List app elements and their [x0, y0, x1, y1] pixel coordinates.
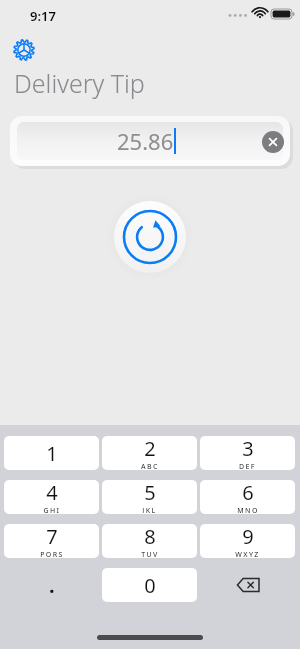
button[interactable]: 4 — [4, 480, 99, 514]
button[interactable]: Settings — [10, 36, 38, 64]
button[interactable]: 3 — [200, 436, 295, 470]
button[interactable]: 25.86 — [17, 122, 283, 160]
staticText: 7 — [46, 524, 58, 550]
button[interactable]: 1 — [4, 436, 99, 470]
staticText: WXYZ — [235, 550, 260, 557]
button[interactable]: 5 — [102, 480, 197, 514]
staticText: ABC — [141, 462, 159, 469]
staticText: . — [49, 572, 55, 599]
staticText: 9 — [242, 524, 254, 550]
staticText: 2 — [144, 436, 156, 462]
staticText: 6 — [242, 480, 254, 506]
button[interactable]: . — [4, 568, 99, 602]
button[interactable]: 9 — [200, 524, 295, 558]
button[interactable]: 2 — [102, 436, 197, 470]
staticText: JKL — [142, 506, 157, 513]
button[interactable]: 7 — [4, 524, 99, 558]
button[interactable]: 0 — [102, 568, 197, 602]
staticText: 3 — [242, 436, 254, 462]
staticText: 1 — [46, 440, 58, 467]
button[interactable]: Clear text — [262, 131, 284, 153]
button[interactable]: 6 — [200, 480, 295, 514]
staticText: 5 — [144, 480, 156, 506]
staticText: 25.86 — [117, 126, 174, 156]
staticText: Delivery Tip — [14, 66, 145, 100]
button[interactable]: 8 — [102, 524, 197, 558]
staticText: 4 — [46, 480, 58, 506]
staticText: PQRS — [40, 550, 64, 557]
staticText: 0 — [144, 572, 156, 599]
button[interactable]: Backspace — [200, 568, 295, 602]
staticText: 8 — [144, 524, 156, 550]
staticText: MNO — [237, 506, 259, 513]
staticText: 9:17 — [30, 7, 56, 25]
staticText: GHI — [43, 506, 61, 513]
staticText: TUV — [141, 550, 159, 557]
button[interactable]: Refresh — [114, 201, 186, 273]
staticText: DEF — [239, 462, 256, 469]
